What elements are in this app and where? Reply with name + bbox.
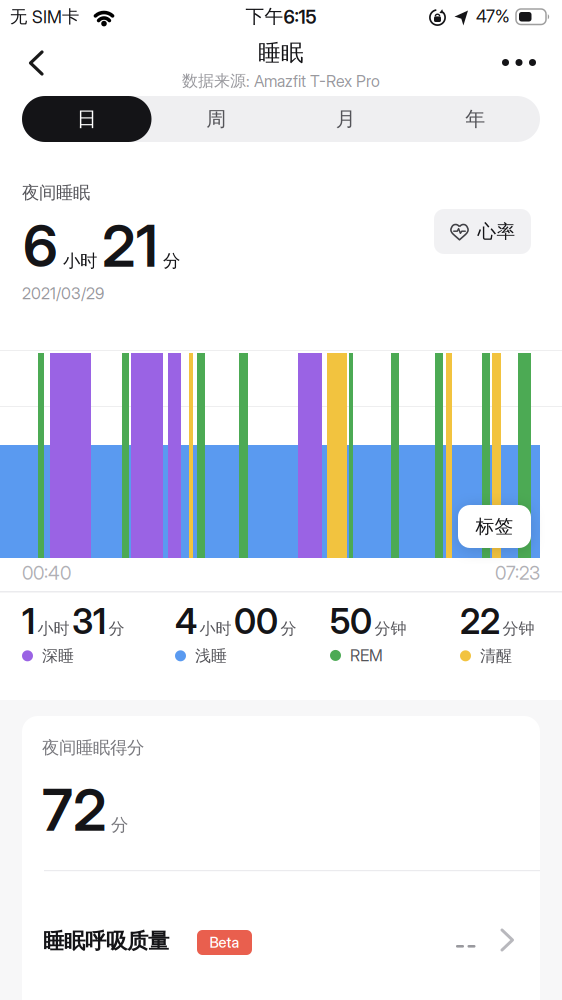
staticText: 分 (280, 619, 296, 639)
staticText: 小时 (37, 619, 69, 639)
staticText: 50 (330, 601, 372, 642)
staticText: 睡眠呼吸质量 (43, 928, 169, 954)
staticText: 睡眠 (258, 39, 304, 67)
staticText: 分 (163, 250, 180, 272)
staticText: 日 (77, 107, 97, 131)
staticText: 夜间睡眠 (22, 182, 90, 203)
staticText: 21 (102, 212, 158, 280)
staticText: 小时 (63, 250, 97, 272)
staticText: 1 (22, 601, 35, 642)
staticText: 深睡 (42, 646, 74, 666)
staticText: 夜间睡眠得分 (42, 737, 144, 758)
staticText: 数据来源: Amazfit T-Rex Pro (182, 71, 380, 91)
staticText: 年 (465, 107, 485, 131)
staticText: 下午6:15 (245, 5, 316, 28)
staticText: Beta (209, 934, 239, 951)
staticText: 31 (72, 601, 106, 642)
staticText: 6 (23, 212, 58, 280)
staticText: 小时 (199, 619, 231, 639)
staticText: 清醒 (480, 646, 512, 666)
staticText: 分钟 (502, 619, 534, 639)
staticText: 心率 (477, 220, 515, 243)
staticText: 分 (108, 619, 124, 639)
staticText: 周 (206, 107, 226, 131)
staticText: 分钟 (374, 619, 406, 639)
staticText: 2021/03/29 (22, 284, 104, 303)
staticText: 07:23 (495, 562, 540, 584)
staticText: 47% (476, 6, 510, 26)
staticText: 72 (42, 776, 107, 844)
staticText: 00 (234, 601, 278, 642)
staticText: 分 (111, 814, 128, 836)
staticText: 00:40 (22, 562, 71, 584)
staticText: 22 (460, 601, 500, 642)
staticText: 浅睡 (195, 646, 227, 666)
staticText: 无 SIM卡 (10, 6, 79, 27)
staticText: REM (350, 646, 383, 665)
staticText: 月 (336, 107, 356, 131)
staticText: 标签 (475, 515, 513, 538)
staticText: 4 (175, 601, 197, 642)
